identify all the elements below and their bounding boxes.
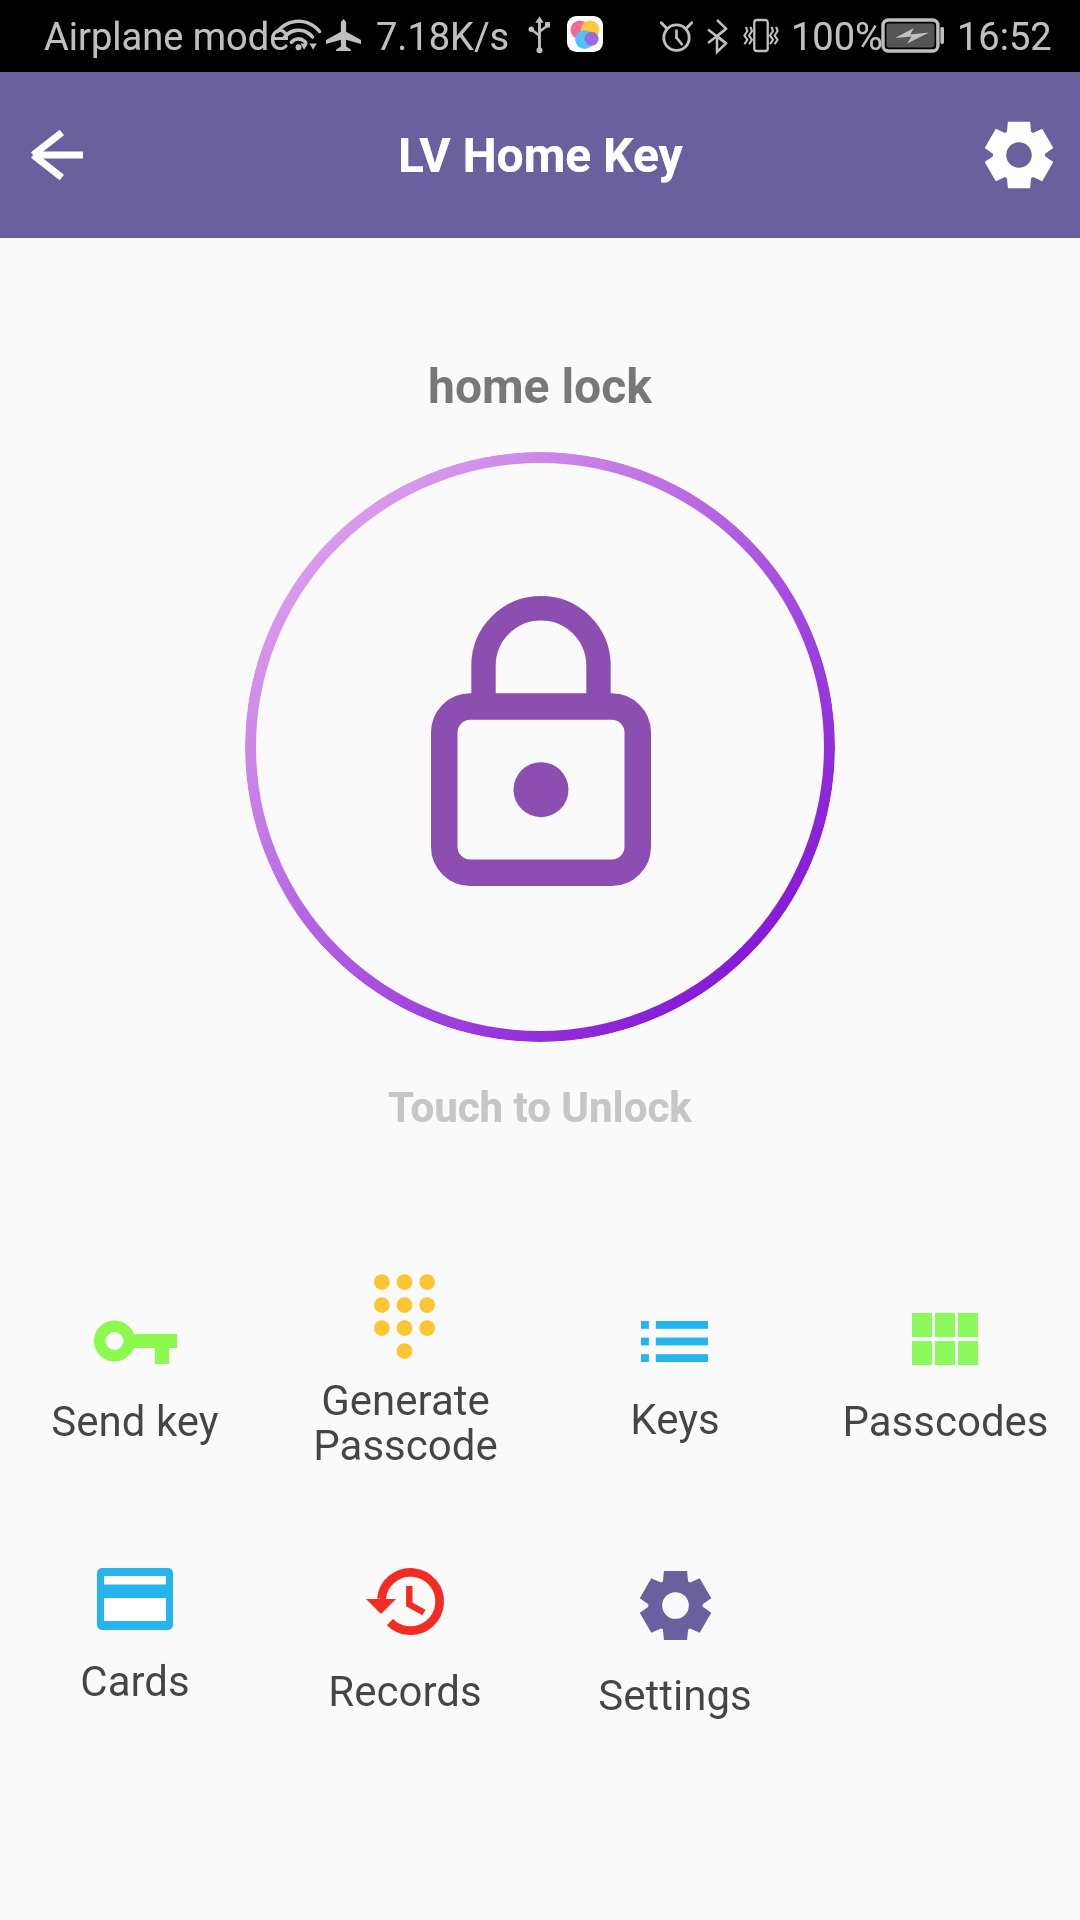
staticText: Touch to Unlock — [388, 1083, 692, 1132]
staticText: LV Home Key — [398, 127, 683, 183]
staticText: 7.18K/s — [376, 15, 510, 60]
button[interactable]: Settings — [540, 1568, 810, 1720]
staticText: Cards — [80, 1657, 190, 1706]
staticText: home lock — [428, 358, 652, 414]
button[interactable]: Cards — [0, 1568, 270, 1706]
staticText: Send key — [51, 1397, 219, 1446]
staticText: Airplane mode — [44, 15, 290, 60]
button[interactable]: Touch to Unlock — [245, 452, 835, 1042]
button[interactable]: Back — [6, 105, 106, 205]
staticText: Passcodes — [842, 1397, 1049, 1446]
staticText: Records — [328, 1667, 482, 1716]
button[interactable]: Send key — [0, 1274, 270, 1446]
staticText: 100% — [791, 15, 883, 60]
staticText: Generate Passcode — [313, 1376, 498, 1470]
button[interactable]: Keys — [540, 1274, 810, 1444]
button[interactable]: Passcodes — [810, 1274, 1080, 1446]
button[interactable]: Settings — [969, 105, 1069, 205]
button[interactable]: Generate Passcode — [270, 1274, 540, 1470]
staticText: 16:52 — [957, 15, 1052, 60]
staticText: Keys — [630, 1395, 720, 1444]
button[interactable]: Records — [270, 1568, 540, 1716]
staticText: Settings — [598, 1671, 752, 1720]
